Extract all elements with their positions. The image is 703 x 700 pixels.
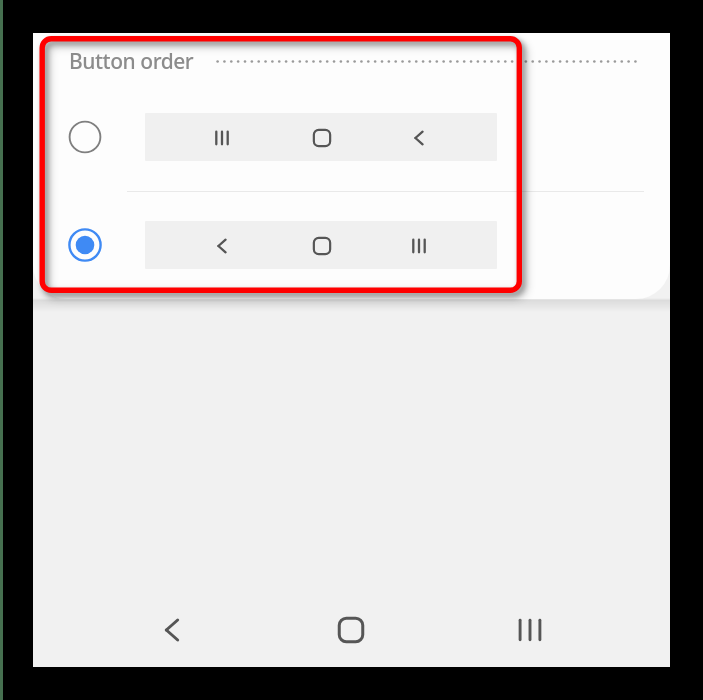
button[interactable] [63, 223, 107, 267]
button[interactable]: Home [307, 586, 395, 674]
button[interactable]: Back [128, 586, 216, 674]
button[interactable] [145, 113, 497, 161]
button[interactable]: Recents [486, 586, 574, 674]
button[interactable] [63, 115, 107, 159]
button[interactable] [145, 221, 497, 269]
staticText: Button order [69, 47, 194, 76]
